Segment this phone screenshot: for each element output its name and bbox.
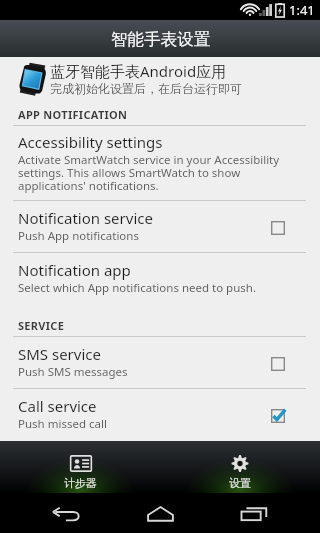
button[interactable]: Home [132,493,188,533]
button[interactable]: Accessibility settings [0,126,320,200]
staticText: Notification service [18,208,153,228]
staticText: Push App notifications [18,228,139,244]
staticText: 计步器 [64,476,97,490]
button[interactable]: Back [38,493,94,533]
staticText: APP NOTIFICATION [18,107,128,122]
button[interactable]: Unchecked [267,353,289,375]
staticText: Select which App notifications need to p… [18,280,257,296]
button[interactable]: 计步器 [0,441,160,493]
staticText: SMS service [18,344,101,364]
button[interactable]: Notification app [0,253,320,304]
staticText: Notification app [18,260,131,280]
staticText: 1:41 [289,1,315,19]
button[interactable]: 设置 [160,441,320,493]
staticText: 设置 [229,476,251,490]
button[interactable]: Notification service [0,201,320,252]
staticText: 蓝牙智能手表Android应用 [50,61,227,81]
button[interactable]: 蓝牙智能手表Android应用 [0,59,320,98]
staticText: Accessibility settings [18,132,163,152]
staticText: SERVICE [18,318,65,333]
button[interactable]: Checked [267,405,289,427]
staticText: Activate SmartWatch service in your Acce… [18,152,289,193]
button[interactable]: Call service [0,389,320,440]
staticText: Call service [18,396,97,416]
button[interactable]: SMS service [0,337,320,388]
staticText: Push missed call [18,416,107,432]
staticText: 完成初始化设置后，在后台运行即可 [50,81,242,96]
staticText: Push SMS messages [18,364,128,380]
button[interactable]: Recents [226,493,282,533]
staticText: 智能手表设置 [111,29,210,50]
button[interactable]: Unchecked [267,217,289,239]
